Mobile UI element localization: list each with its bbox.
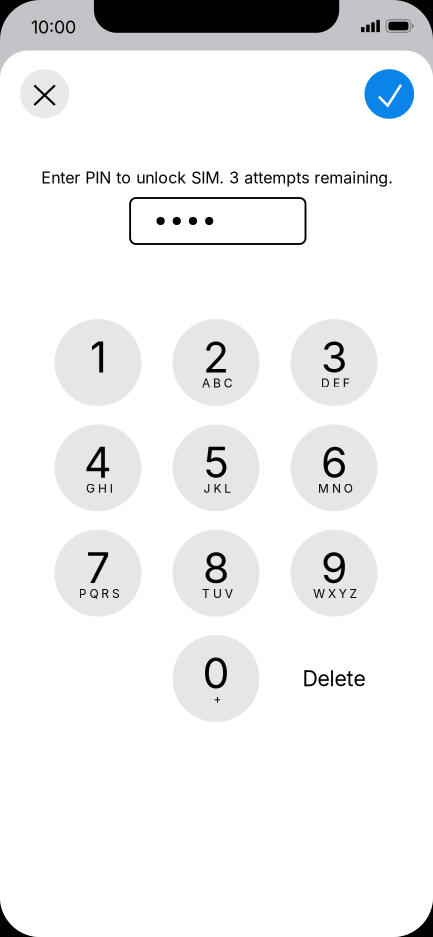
- staticText: 8: [203, 542, 229, 593]
- button[interactable]: Delete: [290, 635, 377, 722]
- button[interactable]: Close: [20, 69, 69, 118]
- staticText: 5: [203, 436, 229, 488]
- staticText: DEF: [321, 376, 350, 390]
- staticText: 10:00: [31, 16, 76, 38]
- staticText: TUV: [202, 586, 233, 601]
- button[interactable]: 5: [172, 424, 259, 511]
- staticText: ABC: [202, 376, 233, 390]
- button[interactable]: Confirm: [364, 69, 414, 119]
- staticText: Delete: [302, 665, 365, 691]
- staticText: 9: [321, 542, 347, 593]
- staticText: +: [213, 692, 221, 706]
- button[interactable]: 2: [172, 319, 259, 406]
- staticText: 3: [321, 331, 347, 383]
- staticText: 2: [203, 331, 229, 383]
- staticText: 1: [89, 331, 106, 383]
- staticText: MNO: [318, 481, 353, 496]
- button[interactable]: 4: [54, 424, 141, 511]
- staticText: 6: [321, 436, 347, 488]
- staticText: JKL: [204, 481, 231, 496]
- staticText: 4: [84, 436, 112, 488]
- button[interactable]: 3: [290, 319, 377, 406]
- button[interactable]: 7: [54, 530, 141, 617]
- button[interactable]: 6: [290, 424, 377, 511]
- staticText: PQRS: [79, 586, 120, 601]
- staticText: WXYZ: [313, 586, 358, 601]
- staticText: GHI: [86, 481, 113, 496]
- button[interactable]: 8: [172, 530, 259, 617]
- staticText: Enter PIN to unlock SIM. 3 attempts rema…: [41, 168, 393, 187]
- button[interactable]: 0: [172, 635, 259, 722]
- staticText: 0: [202, 647, 229, 699]
- button[interactable]: 9: [290, 530, 377, 617]
- staticText: 7: [86, 542, 110, 593]
- button[interactable]: 1: [54, 319, 141, 406]
